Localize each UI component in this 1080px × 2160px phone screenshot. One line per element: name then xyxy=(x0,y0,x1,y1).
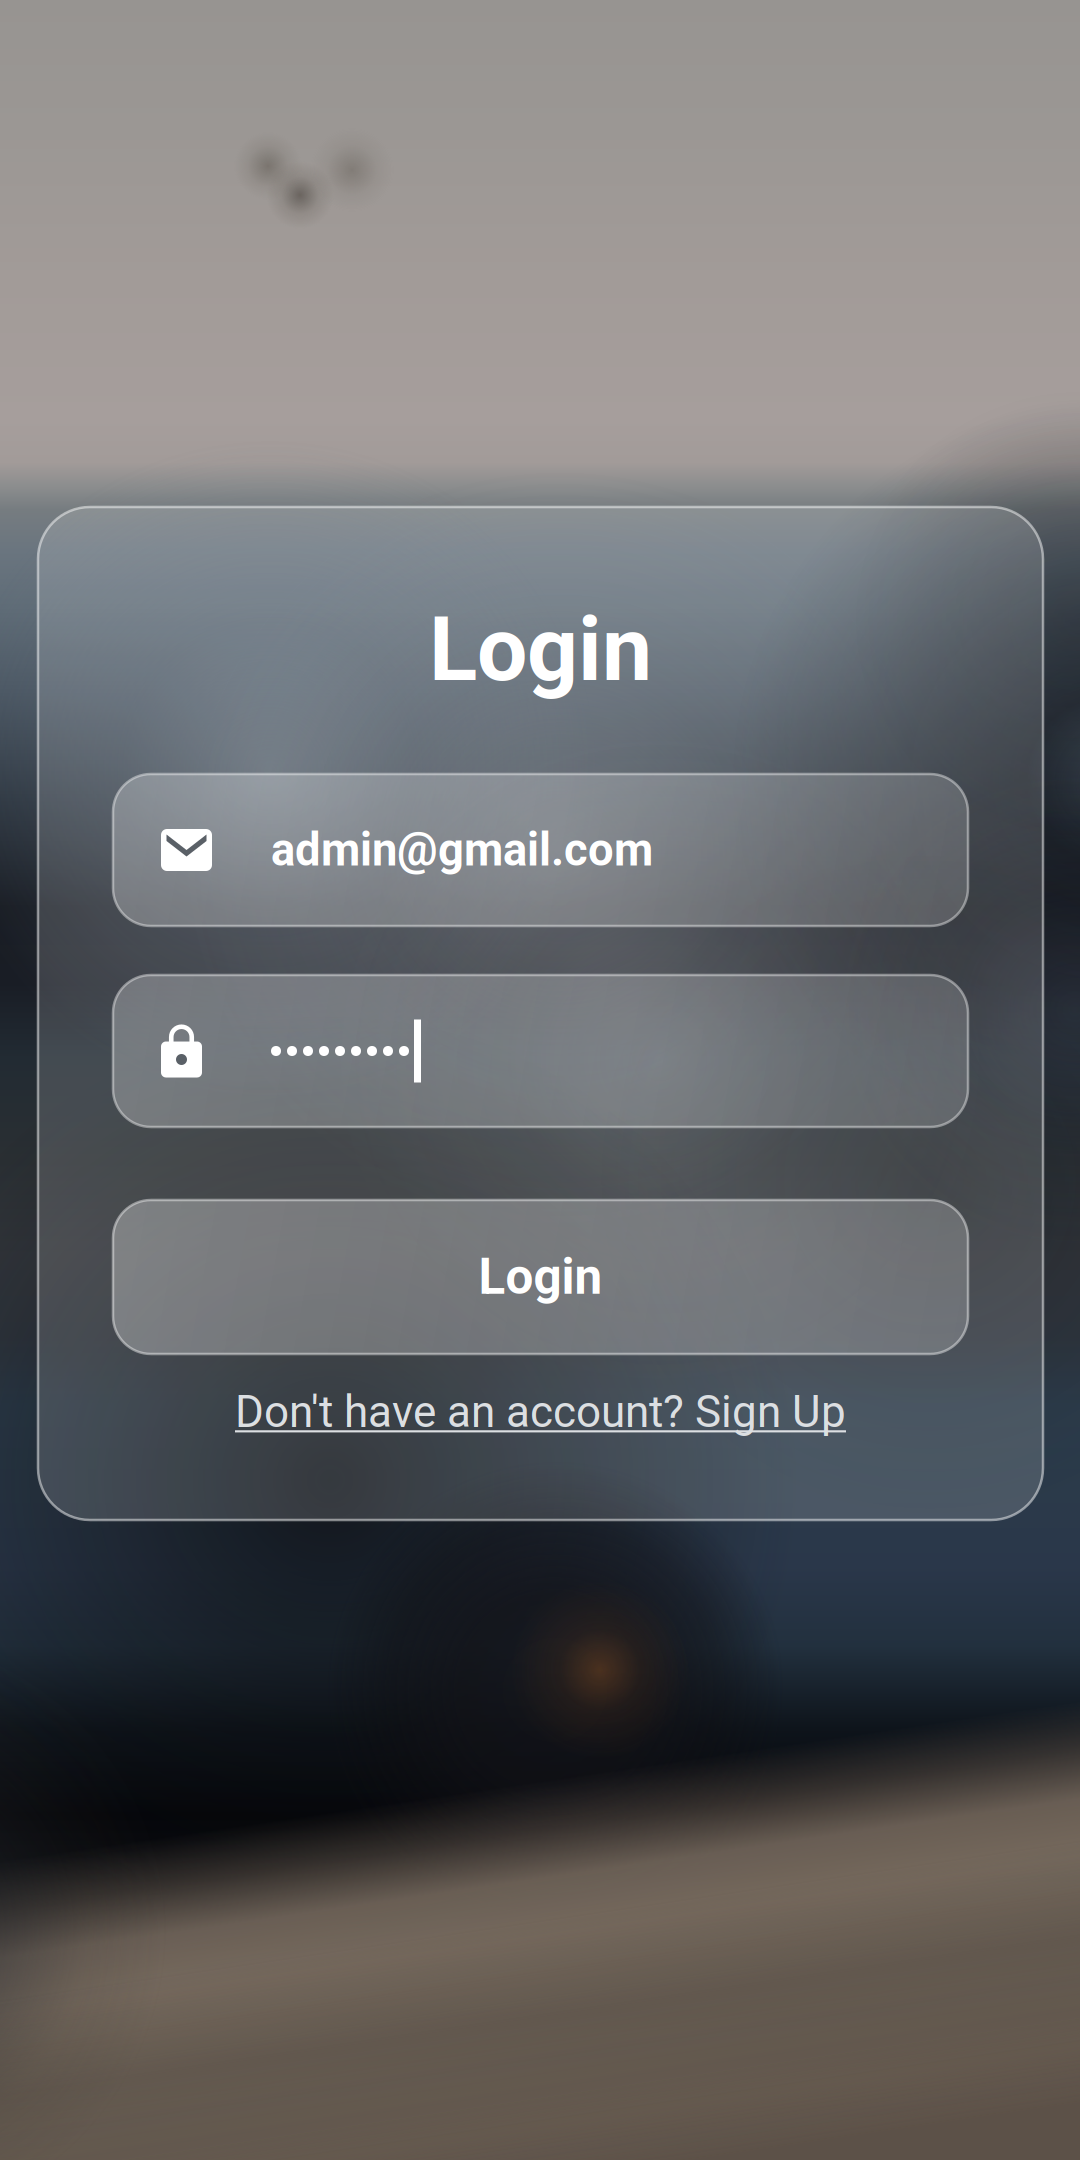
staticText: Don't have an account? Sign Up xyxy=(235,1386,846,1438)
staticText: admin@gmail.com xyxy=(271,823,653,876)
button[interactable]: Login xyxy=(113,1200,968,1354)
staticText: Login xyxy=(478,1248,602,1306)
button[interactable]: Don't have an account? Sign Up xyxy=(190,1385,890,1439)
staticText: Login xyxy=(429,597,652,702)
